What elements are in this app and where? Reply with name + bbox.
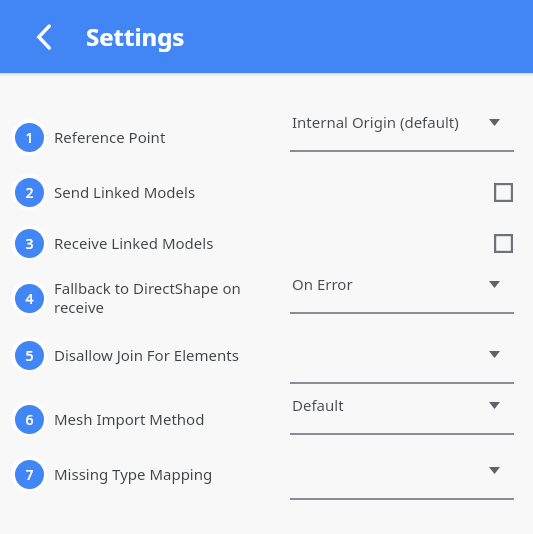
staticText: Fallback to DirectShape on receive xyxy=(54,278,241,317)
button[interactable]: On Error xyxy=(290,270,514,314)
button[interactable]: Toggle option xyxy=(485,225,521,261)
button[interactable]: Toggle option xyxy=(485,174,521,210)
button[interactable]: 2 xyxy=(0,166,533,217)
staticText: Missing Type Mapping xyxy=(54,464,213,484)
staticText: Reference Point xyxy=(54,127,166,147)
staticText: 2 xyxy=(25,183,34,202)
staticText: 4 xyxy=(25,289,34,308)
button[interactable]: Back xyxy=(24,17,64,57)
staticText: 5 xyxy=(25,346,34,365)
button[interactable]: 3 xyxy=(0,217,533,268)
button[interactable]: Default xyxy=(290,391,514,435)
staticText: 1 xyxy=(25,128,34,147)
button[interactable] xyxy=(290,340,514,384)
staticText: Send Linked Models xyxy=(54,182,196,202)
staticText: On Error xyxy=(292,274,353,294)
button[interactable] xyxy=(290,456,514,500)
staticText: Internal Origin (default) xyxy=(292,112,459,132)
button[interactable]: 4 xyxy=(0,268,533,326)
button[interactable]: 5 xyxy=(0,326,533,384)
button[interactable]: Internal Origin (default) xyxy=(290,108,514,152)
button[interactable]: 6 xyxy=(0,391,533,446)
staticText: Default xyxy=(292,395,344,415)
staticText: Receive Linked Models xyxy=(54,233,214,253)
staticText: 3 xyxy=(25,234,34,253)
staticText: Disallow Join For Elements xyxy=(54,345,239,365)
staticText: Settings xyxy=(86,20,185,53)
staticText: 7 xyxy=(25,465,34,484)
staticText: 6 xyxy=(25,410,34,429)
button[interactable]: 1 xyxy=(0,108,533,166)
button[interactable]: 7 xyxy=(0,446,533,501)
staticText: Mesh Import Method xyxy=(54,409,205,429)
